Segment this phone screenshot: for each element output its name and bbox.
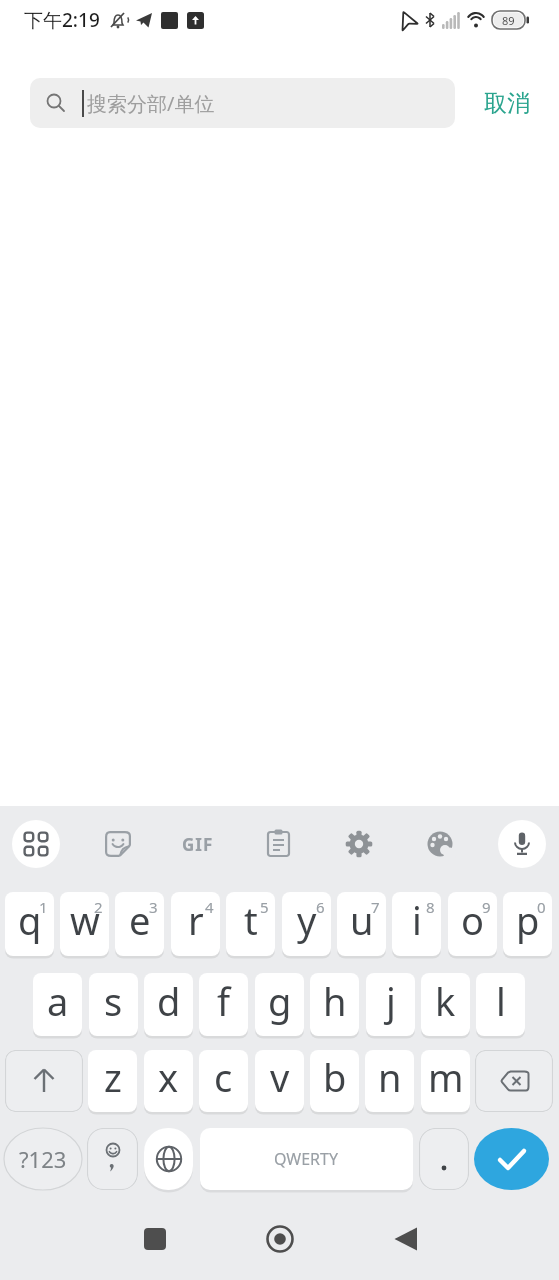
staticText: e [129, 894, 151, 946]
staticText: z [104, 1051, 122, 1103]
staticText: f [217, 975, 231, 1027]
staticText: t [244, 894, 258, 946]
button[interactable]: v [255, 1050, 304, 1112]
staticText: d [157, 975, 181, 1027]
button[interactable]: h [310, 973, 359, 1036]
button[interactable] [87, 1128, 138, 1190]
staticText: 89 [502, 13, 515, 28]
button[interactable] [391, 1224, 421, 1254]
staticText: j [386, 975, 396, 1027]
button[interactable]: b [310, 1050, 359, 1112]
button[interactable] [474, 1128, 549, 1190]
button[interactable]: u [337, 892, 386, 956]
staticText: 搜索分部/单位 [87, 90, 215, 117]
staticText: 8 [426, 897, 435, 917]
button[interactable]: GIF [176, 828, 220, 860]
button[interactable] [12, 820, 60, 868]
button[interactable] [265, 829, 292, 856]
button[interactable]: e [115, 892, 164, 956]
staticText: 2 [94, 897, 103, 917]
button[interactable] [5, 1050, 83, 1112]
button[interactable]: k [421, 973, 470, 1036]
staticText: c [214, 1051, 233, 1103]
staticText: 7 [371, 897, 380, 917]
staticText: 3 [149, 897, 158, 917]
button[interactable]: z [88, 1050, 137, 1112]
button[interactable]: j [366, 973, 415, 1036]
button[interactable] [475, 1050, 553, 1112]
button[interactable]: t [226, 892, 275, 956]
staticText: 下午2:19 [24, 7, 100, 33]
staticText: g [268, 975, 292, 1027]
staticText: 4 [205, 897, 214, 917]
button[interactable] [144, 1128, 193, 1190]
staticText: 1 [39, 897, 48, 917]
staticText: 5 [260, 897, 269, 917]
button[interactable]: p [503, 892, 552, 956]
staticText: GIF [182, 833, 214, 856]
staticText: l [496, 975, 506, 1027]
button[interactable]: QWERTY [200, 1128, 413, 1190]
button[interactable]: w [60, 892, 109, 956]
staticText: 取消 [484, 89, 530, 118]
staticText: QWERTY [274, 1148, 339, 1170]
staticText: o [461, 894, 484, 946]
button[interactable]: r [171, 892, 220, 956]
staticText: w [70, 894, 100, 946]
staticText: m [428, 1051, 464, 1103]
staticText: s [104, 975, 123, 1027]
button[interactable] [419, 1128, 469, 1190]
button[interactable] [140, 1224, 170, 1254]
button[interactable]: ?123 [4, 1128, 82, 1190]
button[interactable] [498, 820, 546, 868]
button[interactable]: a [33, 973, 82, 1036]
staticText: v [270, 1051, 290, 1103]
staticText: q [18, 894, 42, 946]
staticText: p [516, 894, 540, 946]
button[interactable] [345, 830, 373, 858]
staticText: n [378, 1051, 402, 1103]
button[interactable]: o [448, 892, 497, 956]
staticText: y [297, 894, 317, 946]
button[interactable]: s [89, 973, 138, 1036]
staticText: h [323, 975, 347, 1027]
button[interactable] [104, 830, 132, 858]
button[interactable]: c [199, 1050, 248, 1112]
button[interactable]: 取消 [474, 78, 540, 128]
staticText: b [323, 1051, 347, 1103]
button[interactable]: x [144, 1050, 193, 1112]
button[interactable]: q [5, 892, 54, 956]
staticText: x [158, 1051, 179, 1103]
button[interactable]: i [392, 892, 441, 956]
button[interactable]: g [255, 973, 304, 1036]
staticText: k [435, 975, 456, 1027]
button[interactable]: l [476, 973, 525, 1036]
staticText: 6 [316, 897, 325, 917]
staticText: i [412, 894, 422, 946]
button[interactable]: m [421, 1050, 470, 1112]
button[interactable]: d [144, 973, 193, 1036]
staticText: 0 [537, 897, 546, 917]
button[interactable] [426, 830, 454, 858]
button[interactable] [265, 1224, 295, 1254]
staticText: r [188, 894, 204, 946]
staticText: 9 [482, 897, 491, 917]
button[interactable]: n [365, 1050, 414, 1112]
button[interactable]: 搜索分部/单位 [30, 78, 455, 128]
staticText: ?123 [19, 1144, 67, 1174]
button[interactable]: f [199, 973, 248, 1036]
button[interactable]: y [282, 892, 331, 956]
staticText: a [47, 975, 69, 1027]
staticText: u [350, 894, 374, 946]
